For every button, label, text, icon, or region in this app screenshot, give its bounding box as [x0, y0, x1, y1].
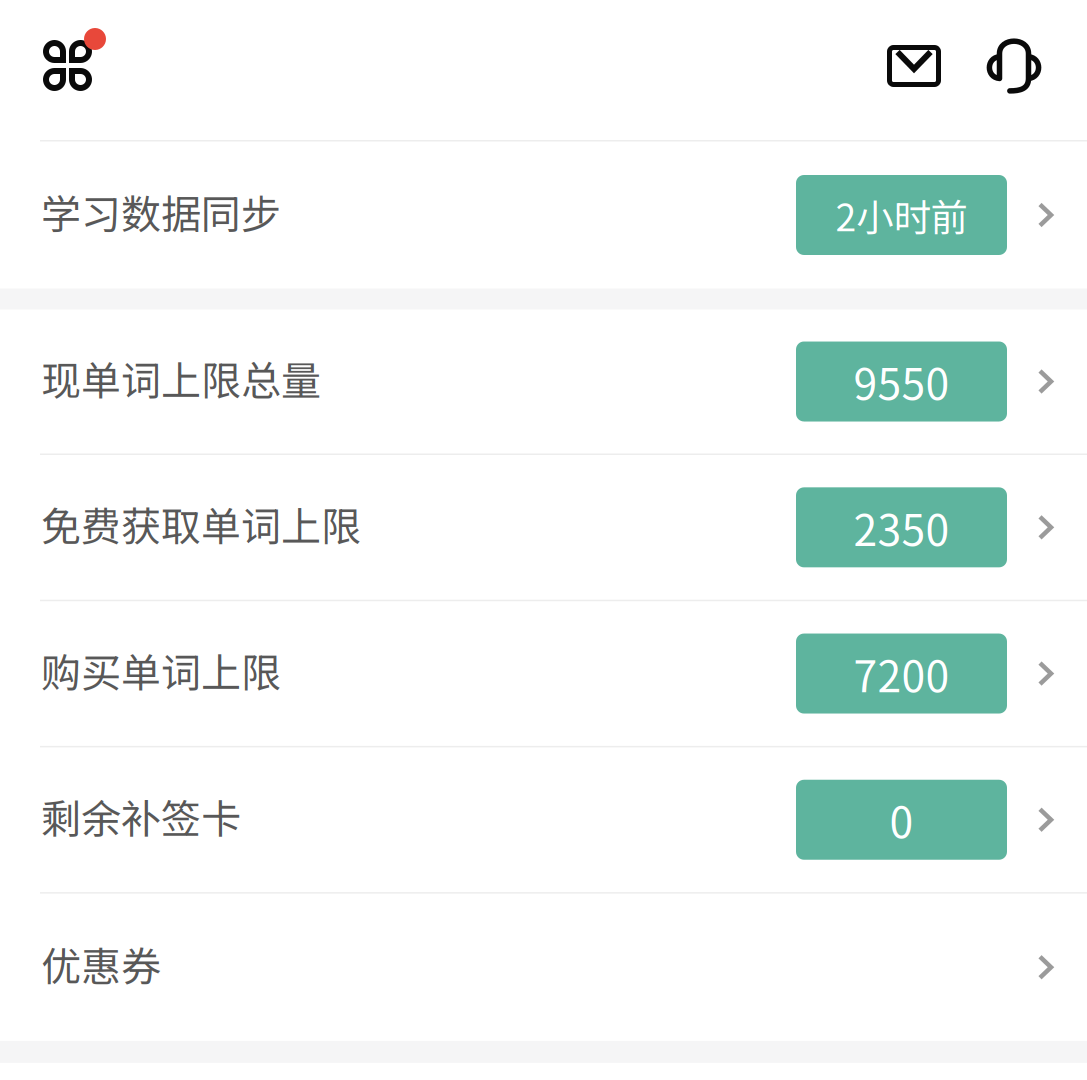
staticText: 现单词上限总量 [41, 349, 321, 407]
button[interactable]: Home [0, 0, 123, 140]
staticText: 9550 [853, 351, 949, 412]
button[interactable]: Messages [885, 0, 963, 140]
staticText: 剩余补签卡 [41, 787, 241, 845]
staticText: 0 [889, 789, 913, 851]
button[interactable]: 优惠券 [0, 894, 1087, 1041]
button[interactable]: 现单词上限总量 [0, 309, 1087, 453]
button[interactable]: 免费获取单词上限 [0, 455, 1087, 600]
staticText: 2小时前 [835, 188, 967, 242]
button[interactable]: Customer support [963, 0, 1087, 140]
button[interactable]: 剩余补签卡 [0, 747, 1087, 892]
staticText: 优惠券 [41, 935, 161, 993]
staticText: 2350 [853, 496, 949, 558]
staticText: 购买单词上限 [41, 641, 281, 699]
button[interactable]: 学习数据同步 [0, 141, 1087, 288]
staticText: 学习数据同步 [41, 182, 281, 240]
button[interactable]: 购买单词上限 [0, 601, 1087, 746]
staticText: 免费获取单词上限 [41, 495, 361, 553]
staticText: 7200 [853, 643, 949, 704]
